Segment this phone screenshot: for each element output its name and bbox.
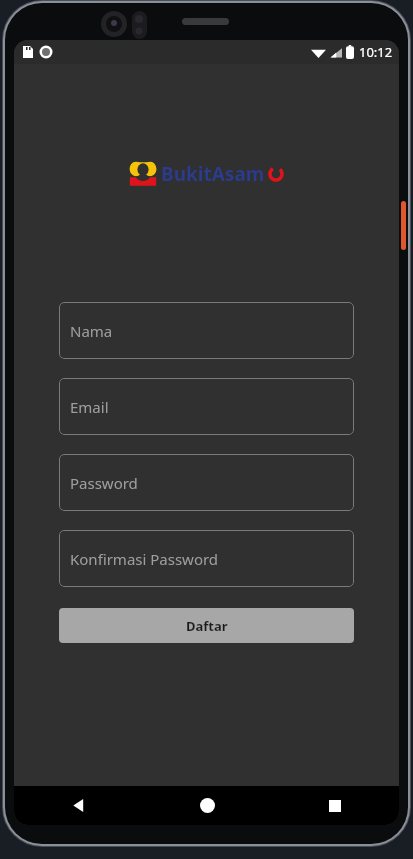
staticText: Nama: [70, 321, 113, 341]
button[interactable]: Konfirmasi Password: [59, 530, 354, 587]
button[interactable]: Back: [14, 786, 143, 825]
staticText: Email: [70, 397, 109, 417]
staticText: Daftar: [186, 617, 228, 635]
button[interactable]: Recent apps: [271, 786, 399, 825]
button[interactable]: Password: [59, 454, 354, 511]
staticText: 10:12: [359, 43, 393, 61]
button[interactable]: Daftar: [59, 608, 354, 643]
button[interactable]: Nama: [59, 302, 354, 359]
staticText: Konfirmasi Password: [70, 549, 219, 569]
staticText: BukitAsam: [161, 161, 265, 187]
button[interactable]: Email: [59, 378, 354, 435]
button[interactable]: Home: [143, 786, 271, 825]
staticText: Password: [70, 473, 138, 493]
